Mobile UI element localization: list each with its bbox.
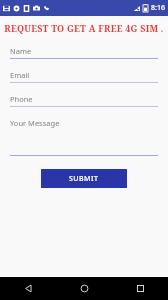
button[interactable]: Name xyxy=(10,46,158,59)
staticText: Phone xyxy=(10,94,33,104)
button[interactable]: Recent apps xyxy=(112,277,168,300)
staticText: Name xyxy=(10,46,32,56)
staticText: Email xyxy=(10,70,30,80)
staticText: 8:16 xyxy=(151,3,165,13)
button[interactable]: Email xyxy=(10,70,158,83)
staticText: SUBMIT xyxy=(69,174,99,184)
button[interactable]: Phone xyxy=(10,94,158,107)
staticText: REQUEST TO GET A FREE 4G SIM . xyxy=(0,22,168,34)
button[interactable]: Your Message xyxy=(10,118,158,156)
button[interactable]: Home xyxy=(56,277,112,300)
button[interactable]: Back xyxy=(0,277,56,300)
button[interactable]: SUBMIT xyxy=(41,169,127,188)
staticText: Your Message xyxy=(10,118,60,128)
